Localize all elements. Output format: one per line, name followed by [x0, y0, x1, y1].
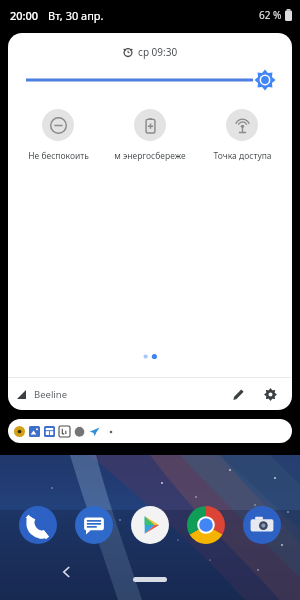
button[interactable]: Play Store [130, 505, 170, 545]
button[interactable]: Back [55, 560, 79, 584]
staticText: Beeline [34, 388, 68, 401]
button[interactable]: Edit tiles [224, 380, 252, 408]
button[interactable]: Camera [242, 505, 282, 545]
button[interactable]: Notifications [8, 419, 292, 443]
button[interactable]: Settings [256, 380, 284, 408]
staticText: Вт, 30 апр. [48, 8, 104, 23]
button[interactable]: Phone [18, 505, 58, 545]
staticText: Не беспокоить [28, 150, 89, 162]
button[interactable]: Home [133, 577, 167, 582]
staticText: 62 % [259, 8, 282, 22]
button[interactable]: Brightness [26, 69, 274, 91]
button[interactable]: м энергосбереже [104, 107, 196, 164]
staticText: м энергосбереже [114, 150, 186, 162]
staticText: ср 09:30 [138, 45, 178, 59]
button[interactable]: Beeline [17, 388, 68, 401]
button[interactable]: Messages [74, 505, 114, 545]
staticText: Точка доступа [213, 150, 272, 162]
staticText: 20:00 [10, 8, 39, 23]
button[interactable]: Chrome [186, 505, 226, 545]
button[interactable]: Не беспокоить [12, 107, 104, 164]
button[interactable]: Точка доступа [196, 107, 288, 164]
